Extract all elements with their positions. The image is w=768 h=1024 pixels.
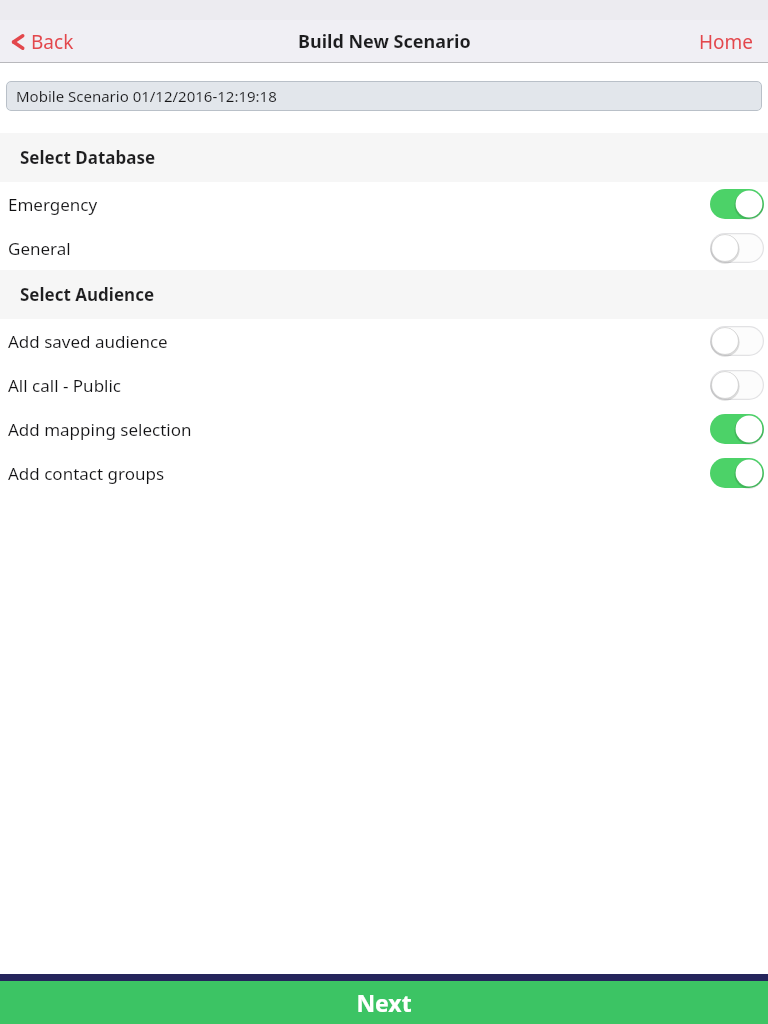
staticText: Select Audience [20, 283, 155, 306]
button[interactable]: All call - Public [0, 363, 768, 407]
button[interactable]: Home [685, 23, 768, 61]
staticText: Home [699, 29, 754, 55]
staticText: Emergency [8, 193, 98, 216]
button[interactable]: Emergency [0, 182, 768, 226]
button[interactable]: Add saved audience [0, 319, 768, 363]
button[interactable]: Next [0, 981, 768, 1024]
staticText: All call - Public [8, 374, 122, 397]
staticText: Add mapping selection [8, 418, 192, 441]
button[interactable]: General [0, 226, 768, 270]
button[interactable]: Add mapping selection [0, 407, 768, 451]
staticText: Select Database [20, 146, 156, 169]
staticText: General [8, 237, 71, 260]
staticText: Add contact groups [8, 462, 165, 485]
staticText: Next [356, 987, 412, 1018]
staticText: Back [31, 29, 74, 55]
button[interactable]: Add contact groups [0, 451, 768, 495]
staticText: Add saved audience [8, 330, 168, 353]
staticText: Mobile Scenario 01/12/2016-12:19:18 [16, 86, 277, 106]
staticText: Build New Scenario [298, 29, 471, 54]
button[interactable]: Mobile Scenario 01/12/2016-12:19:18 [6, 81, 762, 111]
button[interactable]: Back [0, 23, 86, 61]
